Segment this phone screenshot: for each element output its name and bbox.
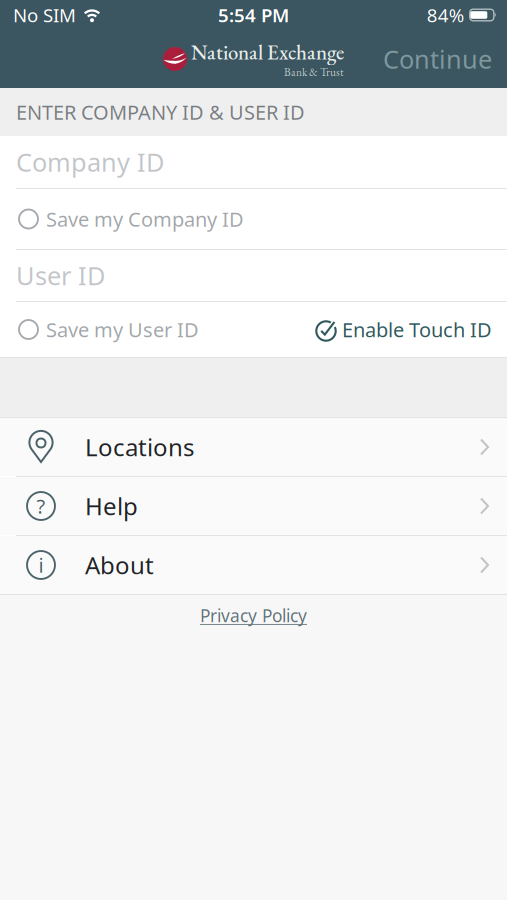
staticText: National Exchange <box>191 39 344 66</box>
staticText: Privacy Policy <box>200 604 307 627</box>
staticText: Save my User ID <box>46 316 199 343</box>
staticText: i <box>38 552 43 578</box>
button[interactable]: Save my User ID <box>0 302 199 357</box>
button[interactable]: Enable Touch ID <box>315 302 507 357</box>
staticText: ? <box>36 493 45 519</box>
staticText: Bank & Trust <box>284 65 344 79</box>
button[interactable]: Privacy Policy <box>200 595 307 627</box>
button[interactable]: Locations <box>0 418 507 476</box>
button[interactable]: Save my Company ID <box>0 189 507 249</box>
staticText: Continue <box>383 42 492 76</box>
button[interactable]: ? <box>0 477 507 535</box>
staticText: Save my Company ID <box>46 206 244 232</box>
button[interactable]: Company ID <box>0 136 507 188</box>
staticText: ENTER COMPANY ID & USER ID <box>16 99 305 125</box>
button[interactable]: Continue <box>383 42 507 76</box>
staticText: Locations <box>85 431 194 463</box>
staticText: About <box>85 549 154 581</box>
staticText: Help <box>85 490 138 522</box>
button[interactable]: i <box>0 536 507 594</box>
staticText: 5:54 PM <box>218 3 289 27</box>
staticText: Enable Touch ID <box>342 316 492 343</box>
staticText: Company ID <box>16 145 164 179</box>
button[interactable]: User ID <box>0 250 507 301</box>
staticText: No SIM <box>13 3 76 27</box>
staticText: 84% <box>427 3 465 27</box>
staticText: User ID <box>16 259 105 292</box>
